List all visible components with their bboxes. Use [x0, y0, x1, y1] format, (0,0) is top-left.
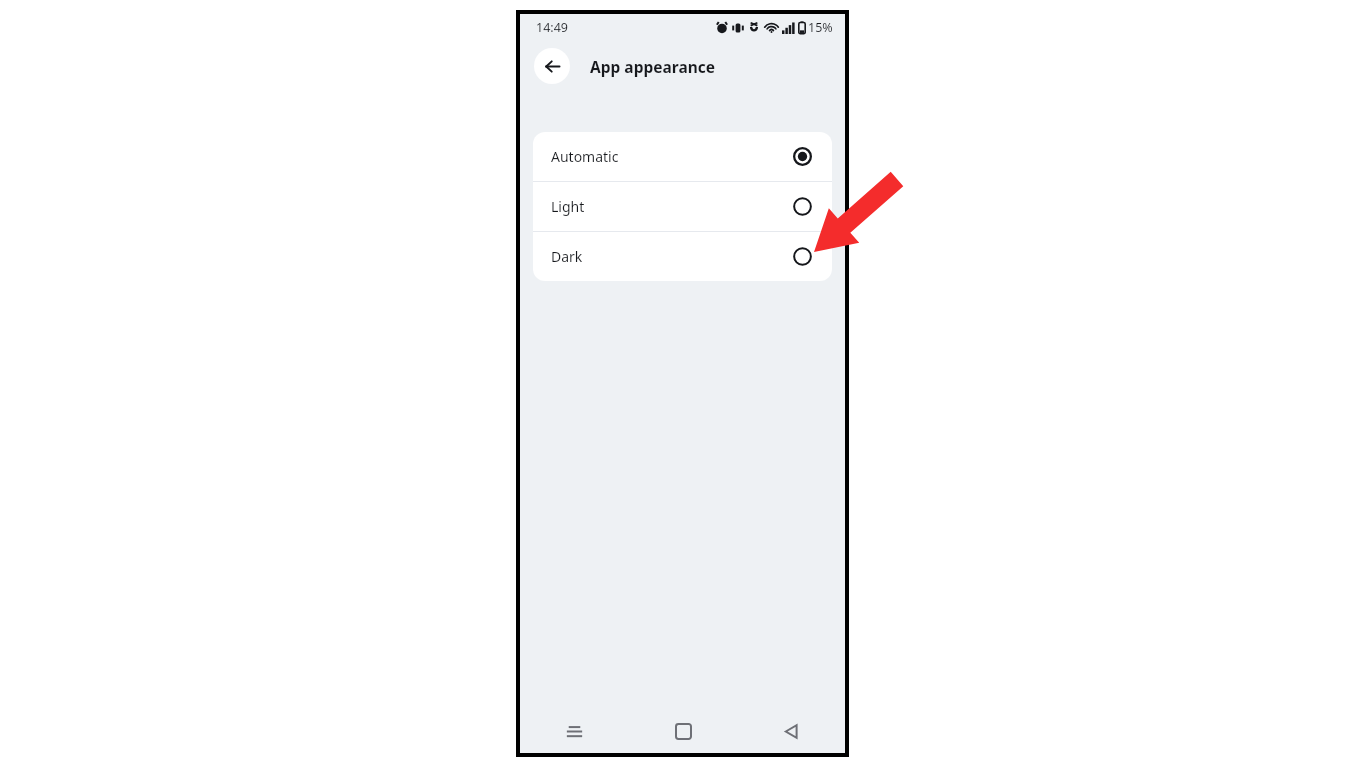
staticText: 14:49	[536, 19, 568, 36]
button[interactable]: Automatic	[533, 132, 832, 181]
button[interactable]: Home	[629, 709, 737, 753]
staticText: Automatic	[551, 147, 619, 166]
button[interactable]: Light	[533, 182, 832, 231]
button[interactable]: Back	[737, 709, 845, 753]
staticText: Light	[551, 197, 585, 216]
button[interactable]: Recent apps	[520, 709, 629, 753]
button[interactable]: Dark	[533, 232, 832, 281]
staticText: 15%	[808, 19, 833, 36]
button[interactable]: Back	[534, 48, 570, 84]
staticText: App appearance	[590, 56, 715, 77]
staticText: Dark	[551, 247, 583, 266]
